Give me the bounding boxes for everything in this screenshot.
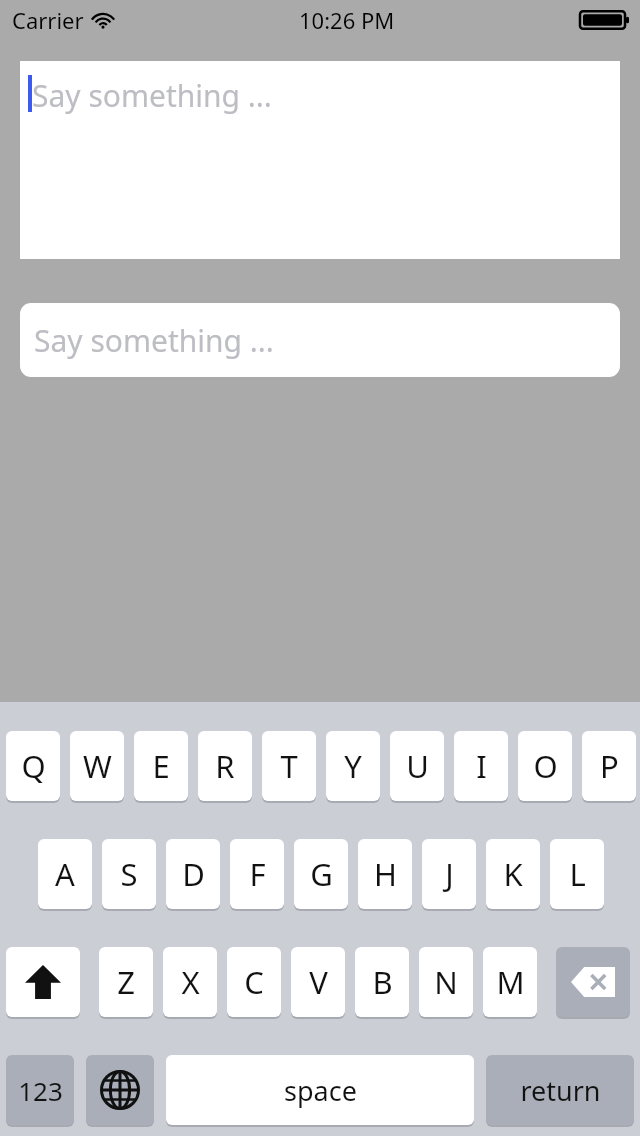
staticText: R (215, 745, 235, 787)
button[interactable]: I (454, 731, 508, 803)
staticText: O (533, 745, 558, 787)
staticText: Say something ... (34, 320, 274, 361)
button[interactable]: Next keyboard (86, 1055, 154, 1127)
staticText: G (310, 853, 333, 895)
button[interactable]: C (227, 947, 281, 1019)
button[interactable]: Z (99, 947, 153, 1019)
button[interactable]: V (291, 947, 345, 1019)
button[interactable]: Q (6, 731, 60, 803)
staticText: return (520, 1072, 601, 1109)
button[interactable]: L (550, 839, 604, 911)
button[interactable]: P (582, 731, 636, 803)
button[interactable]: Shift (6, 947, 80, 1019)
button[interactable]: M (483, 947, 537, 1019)
staticText: U (406, 745, 429, 787)
staticText: C (244, 961, 264, 1003)
button[interactable]: B (355, 947, 409, 1019)
staticText: Z (117, 961, 135, 1003)
staticText: L (569, 853, 586, 895)
staticText: B (372, 961, 393, 1003)
button[interactable]: W (70, 731, 124, 803)
button[interactable]: E (134, 731, 188, 803)
staticText: M (496, 961, 525, 1003)
staticText: H (374, 853, 397, 895)
button[interactable]: D (166, 839, 220, 911)
staticText: 123 (18, 1073, 63, 1108)
staticText: K (503, 853, 523, 895)
staticText: Carrier (12, 5, 84, 35)
button[interactable]: K (486, 839, 540, 911)
staticText: V (309, 961, 328, 1003)
staticText: Q (21, 745, 46, 787)
staticText: E (152, 745, 170, 787)
button[interactable]: space (166, 1055, 474, 1127)
button[interactable]: T (262, 731, 316, 803)
button[interactable]: G (294, 839, 348, 911)
button[interactable]: J (422, 839, 476, 911)
button[interactable]: Say something ... (20, 61, 620, 259)
staticText: 10:26 PM (299, 5, 395, 35)
button[interactable]: O (518, 731, 572, 803)
button[interactable]: N (419, 947, 473, 1019)
staticText: Say something ... (32, 75, 272, 116)
button[interactable]: U (390, 731, 444, 803)
staticText: W (83, 745, 112, 787)
staticText: N (434, 961, 458, 1003)
staticText: S (120, 853, 138, 895)
button[interactable]: F (230, 839, 284, 911)
button[interactable]: R (198, 731, 252, 803)
button[interactable]: Say something ... (20, 303, 620, 377)
staticText: X (181, 961, 200, 1003)
staticText: T (280, 745, 298, 787)
staticText: F (249, 853, 266, 895)
staticText: space (284, 1072, 357, 1109)
button[interactable]: Y (326, 731, 380, 803)
staticText: P (600, 745, 619, 787)
button[interactable]: X (163, 947, 217, 1019)
button[interactable]: A (38, 839, 92, 911)
button[interactable]: H (358, 839, 412, 911)
staticText: D (182, 853, 205, 895)
button[interactable]: S (102, 839, 156, 911)
staticText: Y (344, 745, 362, 787)
button[interactable]: 123 (6, 1055, 74, 1127)
button[interactable]: return (486, 1055, 634, 1127)
staticText: A (55, 853, 75, 895)
staticText: J (445, 853, 454, 895)
staticText: I (476, 745, 487, 787)
button[interactable]: Backspace (556, 947, 630, 1019)
